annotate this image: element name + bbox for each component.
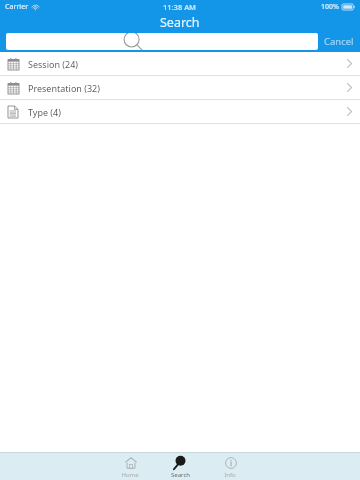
staticText: Carrier — [5, 2, 29, 12]
button[interactable]: Search — [155, 453, 205, 480]
button[interactable]: Session (24) — [0, 52, 360, 76]
button[interactable]: Cancel — [318, 33, 360, 50]
button[interactable]: cardio — [6, 33, 318, 50]
staticText: Type (4) — [28, 106, 61, 118]
staticText: Session (24) — [28, 58, 79, 70]
staticText: 11:38 AM — [163, 2, 196, 12]
button[interactable]: Type (4) — [0, 100, 360, 124]
staticText: Info — [224, 471, 236, 479]
button[interactable]: Presentation (32) — [0, 76, 360, 100]
staticText: Search — [171, 471, 190, 479]
button[interactable]: Home — [105, 453, 155, 480]
staticText: Cancel — [324, 35, 354, 48]
staticText: Search — [160, 14, 200, 31]
button[interactable]: Info — [205, 453, 255, 480]
staticText: Home — [121, 471, 139, 479]
staticText: Presentation (32) — [28, 82, 100, 94]
staticText: 100% — [321, 2, 339, 12]
